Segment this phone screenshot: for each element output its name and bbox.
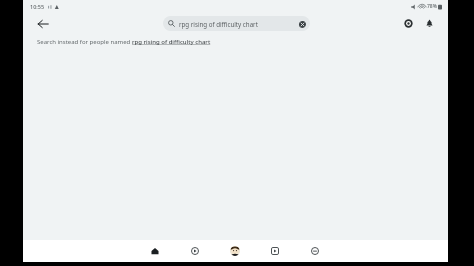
- button[interactable]: Home: [146, 241, 164, 261]
- button[interactable]: Create: [226, 241, 244, 261]
- staticText: 78%: [427, 3, 437, 10]
- staticText: rpg rising of difficulty chart: [132, 38, 211, 46]
- button[interactable]: Back: [33, 14, 53, 34]
- staticText: rpg rising of difficulty chart: [179, 20, 296, 28]
- button[interactable]: Search instead for people named: [37, 38, 448, 46]
- button[interactable]: Notifications: [421, 15, 438, 32]
- button[interactable]: You: [306, 241, 324, 261]
- staticText: 10:55: [30, 3, 45, 10]
- button[interactable]: Clear search: [298, 20, 306, 28]
- button[interactable]: Shorts: [186, 241, 204, 261]
- button[interactable]: Cast: [400, 15, 417, 32]
- button[interactable]: Subscriptions: [266, 241, 284, 261]
- button[interactable]: rpg rising of difficulty chart: [163, 16, 310, 31]
- staticText: Search instead for people named: [37, 38, 132, 46]
